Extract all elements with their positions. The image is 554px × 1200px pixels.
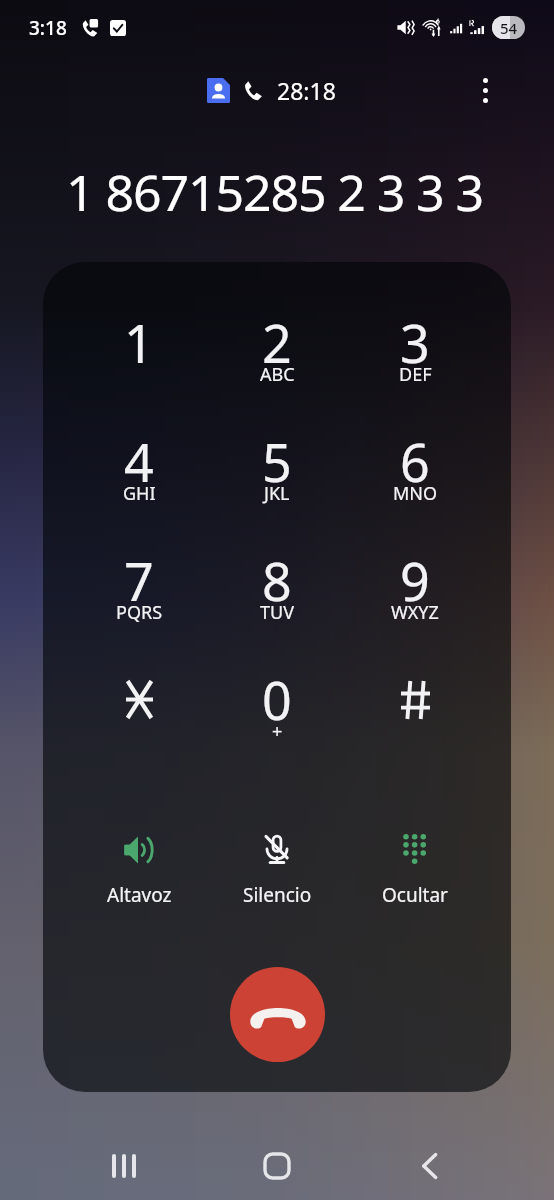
- staticText: 54: [500, 18, 518, 38]
- staticText: 1: [124, 307, 154, 378]
- staticText: JKL: [264, 481, 290, 506]
- staticText: 3:18: [29, 15, 67, 41]
- button[interactable]: 1: [70, 306, 208, 425]
- staticText: 3: [400, 307, 430, 378]
- staticText: 8: [262, 545, 292, 616]
- staticText: Altavoz: [107, 882, 172, 908]
- button[interactable]: Ocultar: [346, 833, 484, 908]
- staticText: 9: [400, 545, 430, 616]
- staticText: 5: [262, 426, 292, 497]
- staticText: 4: [124, 426, 154, 497]
- staticText: MNO: [393, 481, 438, 506]
- button[interactable]: 8: [208, 544, 346, 663]
- button[interactable]: 9: [346, 544, 484, 663]
- staticText: GHI: [123, 481, 156, 506]
- button[interactable]: More options: [475, 70, 496, 111]
- staticText: 2: [262, 307, 292, 378]
- staticText: ABC: [260, 362, 295, 387]
- staticText: Ocultar: [382, 882, 448, 908]
- button[interactable]: 3: [346, 306, 484, 425]
- button[interactable]: Home: [248, 1137, 306, 1195]
- staticText: 1 86715285 2 3 3 3: [66, 158, 483, 226]
- button[interactable]: 5: [208, 425, 346, 544]
- button[interactable]: 2: [208, 306, 346, 425]
- button[interactable]: Silencio: [208, 833, 346, 908]
- button[interactable]: [346, 663, 484, 782]
- button[interactable]: Recents: [95, 1137, 153, 1195]
- staticText: +: [272, 719, 283, 744]
- staticText: DEF: [399, 362, 432, 387]
- staticText: PQRS: [116, 600, 163, 625]
- button[interactable]: 6: [346, 425, 484, 544]
- button[interactable]: Back: [401, 1137, 459, 1195]
- staticText: 6: [400, 426, 430, 497]
- staticText: 7: [124, 545, 154, 616]
- staticText: 28:18: [277, 75, 336, 106]
- staticText: WXYZ: [391, 600, 439, 625]
- button[interactable]: End call: [230, 967, 325, 1062]
- staticText: TUV: [260, 600, 294, 625]
- button[interactable]: 7: [70, 544, 208, 663]
- button[interactable]: Altavoz: [70, 833, 208, 908]
- staticText: 0: [262, 664, 292, 735]
- button[interactable]: [70, 663, 208, 782]
- staticText: Silencio: [243, 882, 312, 908]
- button[interactable]: 0: [208, 663, 346, 782]
- button[interactable]: 4: [70, 425, 208, 544]
